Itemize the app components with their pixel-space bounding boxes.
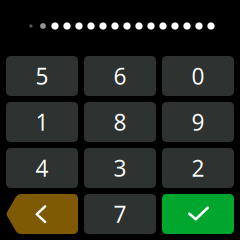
button[interactable]: 6	[84, 56, 156, 96]
button[interactable]: 9	[162, 102, 234, 142]
staticText: 0	[191, 61, 204, 91]
staticText: 4	[35, 153, 48, 183]
staticText: 9	[191, 107, 204, 137]
button[interactable]: 4	[6, 148, 78, 188]
button[interactable]: 8	[84, 102, 156, 142]
staticText: 2	[191, 153, 204, 183]
button[interactable]: Confirm	[162, 194, 234, 234]
staticText: 1	[35, 107, 48, 137]
button[interactable]: 1	[6, 102, 78, 142]
staticText: 3	[113, 153, 126, 183]
button[interactable]: 7	[84, 194, 156, 234]
button[interactable]: 2	[162, 148, 234, 188]
staticText: 6	[113, 61, 126, 91]
button[interactable]: 3	[84, 148, 156, 188]
button[interactable]: 0	[162, 56, 234, 96]
staticText: 7	[113, 199, 126, 229]
button[interactable]: Delete	[6, 194, 78, 234]
staticText: 5	[35, 61, 48, 91]
staticText: 8	[113, 107, 126, 137]
button[interactable]: 5	[6, 56, 78, 96]
